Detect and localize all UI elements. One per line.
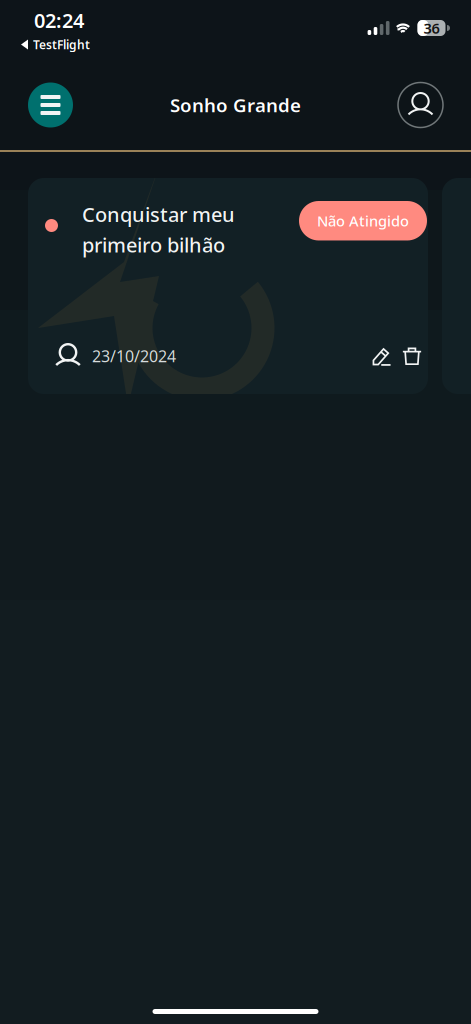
staticText: primeiro bilhão [82, 232, 225, 258]
button[interactable]: Edit [367, 341, 397, 371]
button[interactable]: Delete [397, 341, 427, 371]
staticText: 36 [423, 18, 439, 38]
staticText: Não Atingido [317, 211, 409, 230]
staticText: TestFlight [33, 37, 90, 52]
staticText: 02:24 [34, 7, 84, 34]
staticText: Conquistar meu [82, 201, 235, 228]
staticText: 23/10/2024 [92, 345, 176, 367]
staticText: Sonho Grande [170, 93, 301, 117]
button[interactable]: Menu [28, 82, 73, 127]
button[interactable]: Profile [398, 82, 443, 127]
